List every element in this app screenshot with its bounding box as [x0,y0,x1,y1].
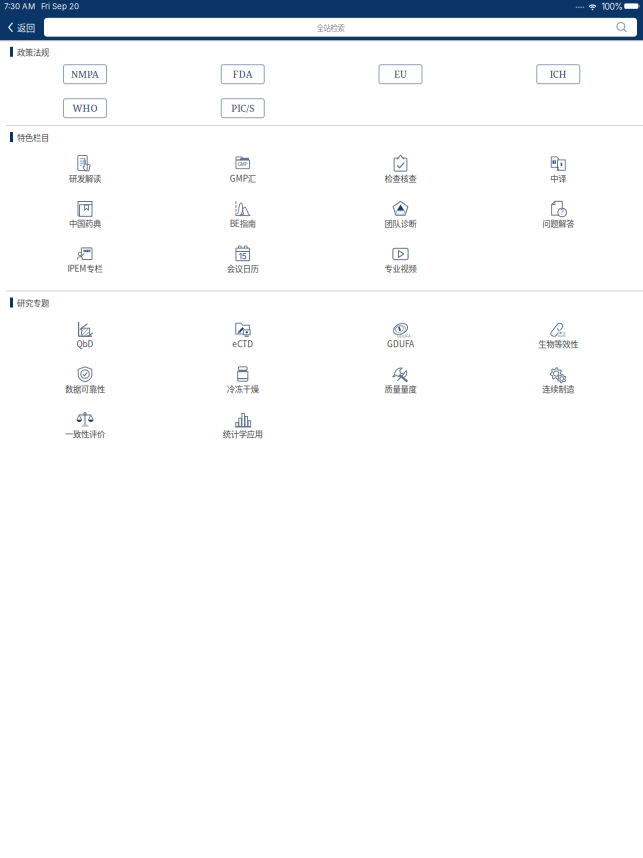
staticText: 冷冻干燥 [227,383,259,395]
staticText: eCTD [232,338,253,350]
button[interactable]: 冷冻干燥 [173,364,313,396]
button[interactable]: 研发解读 [15,153,155,185]
staticText: IPEM专栏 [67,262,102,274]
button[interactable]: 生物等效性 [488,319,628,351]
staticText: EU [394,68,407,81]
button[interactable]: 返回 [4,17,38,39]
staticText: 100% [601,1,622,12]
button[interactable]: PIC/S [221,98,265,118]
staticText: 研究专题 [17,297,49,309]
staticText: BE指南 [230,217,256,229]
staticText: 政策法规 [17,46,49,58]
staticText: GDUFA [387,338,414,350]
button[interactable]: GMP [173,153,313,185]
staticText: 特色栏目 [17,131,49,143]
staticText: 中译 [550,172,566,184]
button[interactable]: ? [488,198,628,230]
staticText: 一致性评价 [65,428,105,440]
button[interactable]: 质量量度 [330,364,470,396]
button[interactable]: EU [378,64,422,84]
staticText: 统计学应用 [223,428,263,440]
staticText: GMP [238,162,248,167]
button[interactable]: 一致性评价 [15,409,155,441]
staticText: 检查核查 [384,172,416,184]
staticText: 质量量度 [384,383,416,395]
staticText: 生物等效性 [538,338,578,350]
button[interactable]: WHO [63,98,107,118]
button[interactable]: 统计学应用 [173,409,313,441]
staticText: 问题解答 [542,217,574,229]
staticText: QbD [76,338,93,350]
staticText: FDA [233,68,253,81]
button[interactable]: 中译 [488,153,628,185]
staticText: IPEM [83,249,91,253]
button[interactable]: ICH [536,64,580,84]
staticText: 返回 [17,21,35,34]
staticText: WHO [72,102,97,115]
staticText: 7:30 AM [4,2,35,11]
staticText: PIC/S [231,102,254,115]
staticText: 中国药典 [69,217,101,229]
staticText: Fri Sep 20 [35,2,79,11]
button[interactable]: NMPA [63,64,107,84]
staticText: GDUFA [397,334,411,338]
button[interactable]: 检查核查 [330,153,470,185]
button[interactable]: 团队诊断 [330,198,470,230]
staticText: 15 [239,251,247,261]
staticText: 团队诊断 [384,217,416,229]
staticText: 专业视频 [384,262,416,274]
button[interactable]: 数据可靠性 [15,364,155,396]
button[interactable]: 专业视频 [330,243,470,275]
staticText: ? [560,208,564,217]
button[interactable]: IPEM [15,243,155,275]
button[interactable]: GDUFA [330,319,470,351]
button[interactable]: BE指南 [173,198,313,230]
button[interactable]: 15 [173,243,313,275]
button[interactable]: QbD [15,319,155,351]
button[interactable]: eCTD [173,319,313,351]
staticText: NMPA [71,68,99,81]
staticText: 数据可靠性 [65,383,105,395]
staticText: 会议日历 [227,262,259,274]
staticText: ICH [550,68,567,81]
staticText: 研发解读 [69,172,101,184]
button[interactable]: FDA [221,64,265,84]
button[interactable]: 连续制造 [488,364,628,396]
button[interactable]: 中国药典 [15,198,155,230]
staticText: GMP汇 [230,172,256,184]
staticText: 连续制造 [542,383,574,395]
staticText: 全站检索 [316,22,344,33]
